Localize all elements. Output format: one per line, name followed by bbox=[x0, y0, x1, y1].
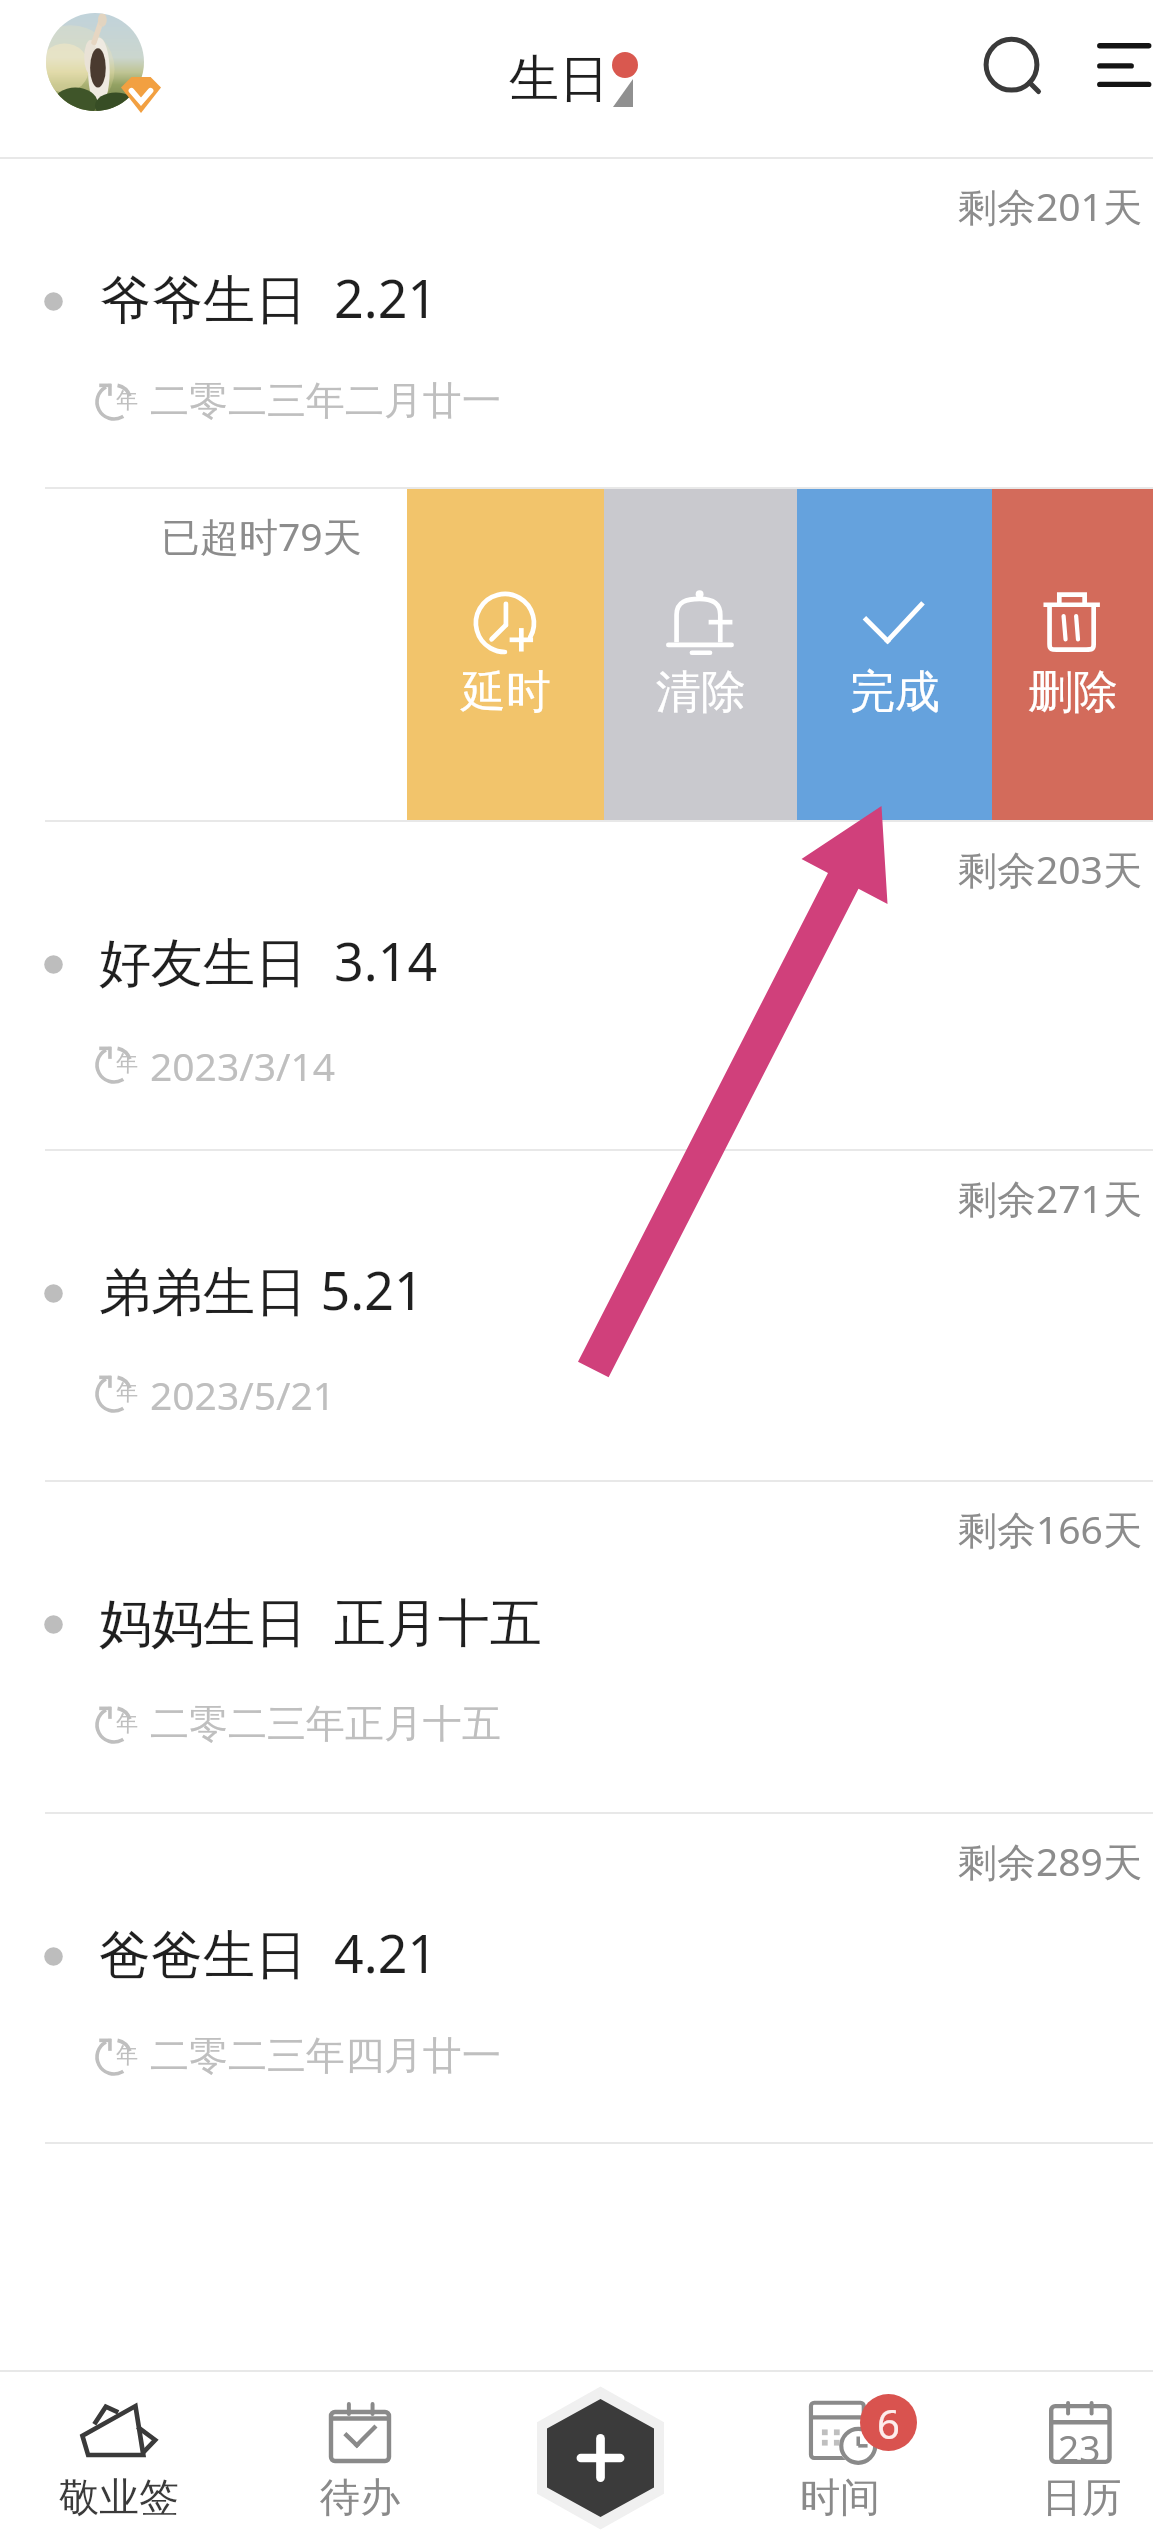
button[interactable]: 完成 bbox=[797, 489, 992, 822]
staticText: 弟弟生日 5.21 bbox=[99, 1254, 424, 1325]
staticText: 2023/3/14 bbox=[150, 1039, 336, 1092]
staticText: 剩余289天 bbox=[958, 1834, 1142, 1887]
button[interactable]: Search bbox=[961, 14, 1062, 115]
button[interactable]: 敬业签 bbox=[49, 2370, 189, 2548]
staticText: 已超时79天 bbox=[161, 509, 362, 562]
button[interactable]: Add bbox=[523, 2381, 678, 2536]
button[interactable]: Menu bbox=[1090, 14, 1153, 82]
staticText: 剩余203天 bbox=[958, 842, 1142, 895]
staticText: 23 bbox=[1058, 2422, 1101, 2472]
staticText: 年 bbox=[116, 1710, 138, 1738]
button[interactable]: 清除 bbox=[604, 489, 797, 822]
button[interactable]: 时间 bbox=[770, 2370, 910, 2548]
staticText: 删除 bbox=[1028, 664, 1118, 721]
staticText: 爸爸生日 4.21 bbox=[99, 1917, 438, 1988]
staticText: 爷爷生日 2.21 bbox=[99, 262, 438, 333]
staticText: 好友生日 3.14 bbox=[99, 925, 438, 996]
button[interactable]: 待办 bbox=[290, 2370, 430, 2548]
button[interactable]: 剩余271天 bbox=[0, 1151, 1153, 1482]
staticText: 生日 bbox=[509, 48, 609, 111]
staticText: 年 bbox=[116, 1379, 138, 1407]
button[interactable]: 日历 bbox=[1012, 2370, 1152, 2548]
staticText: 年 bbox=[116, 1050, 138, 1078]
staticText: 剩余271天 bbox=[958, 1171, 1142, 1224]
staticText: 二零二三年四月廿一 bbox=[150, 2031, 501, 2080]
staticText: 年 bbox=[116, 2042, 138, 2070]
button[interactable]: Profile bbox=[42, 8, 166, 132]
button[interactable]: 延时 bbox=[407, 489, 604, 822]
staticText: 清除 bbox=[656, 664, 746, 721]
button[interactable]: 生日 bbox=[509, 48, 645, 111]
staticText: 时间 bbox=[800, 2472, 880, 2522]
staticText: 二零二三年二月廿一 bbox=[150, 376, 501, 425]
staticText: 剩余201天 bbox=[958, 179, 1142, 232]
button[interactable]: 剩余289天 bbox=[0, 1814, 1153, 2144]
staticText: 敬业签 bbox=[59, 2472, 179, 2522]
button[interactable]: 剩余166天 bbox=[0, 1482, 1153, 1814]
staticText: 日历 bbox=[1042, 2472, 1122, 2522]
staticText: 剩余166天 bbox=[958, 1502, 1142, 1555]
staticText: 6 bbox=[877, 2396, 900, 2450]
button[interactable]: 剩余201天 bbox=[0, 159, 1153, 489]
staticText: 年 bbox=[116, 387, 138, 415]
staticText: 完成 bbox=[850, 664, 940, 721]
button[interactable]: 删除 bbox=[992, 489, 1153, 822]
staticText: 妈妈生日 正月十五 bbox=[99, 1585, 543, 1656]
staticText: 延时 bbox=[461, 664, 551, 721]
staticText: 2023/5/21 bbox=[150, 1368, 336, 1421]
staticText: 二零二三年正月十五 bbox=[150, 1699, 501, 1748]
button[interactable]: 剩余203天 bbox=[0, 822, 1153, 1151]
staticText: 待办 bbox=[320, 2472, 400, 2522]
